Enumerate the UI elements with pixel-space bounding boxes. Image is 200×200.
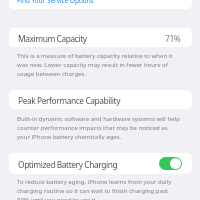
button[interactable]: Optimized Battery Charging [159, 157, 182, 170]
staticText: Peak Performance Capability [18, 95, 121, 106]
button[interactable]: Maximum Capacity [9, 28, 192, 47]
staticText: Built-in dynamic software and hardware s… [17, 115, 187, 141]
staticText: To reduce battery aging, iPhone learns f… [17, 178, 187, 200]
staticText: Maximum Capacity [18, 33, 87, 44]
staticText: This is a measure of battery capacity re… [17, 52, 187, 78]
button[interactable] [9, 0, 192, 9]
button[interactable]: Peak Performance Capability [9, 90, 192, 109]
staticText: 71% [165, 33, 181, 44]
button[interactable]: Optimized Battery Charging [9, 153, 192, 174]
staticText: Optimized Battery Charging [18, 159, 118, 170]
staticText: Find Your Service Options [17, 0, 94, 5]
